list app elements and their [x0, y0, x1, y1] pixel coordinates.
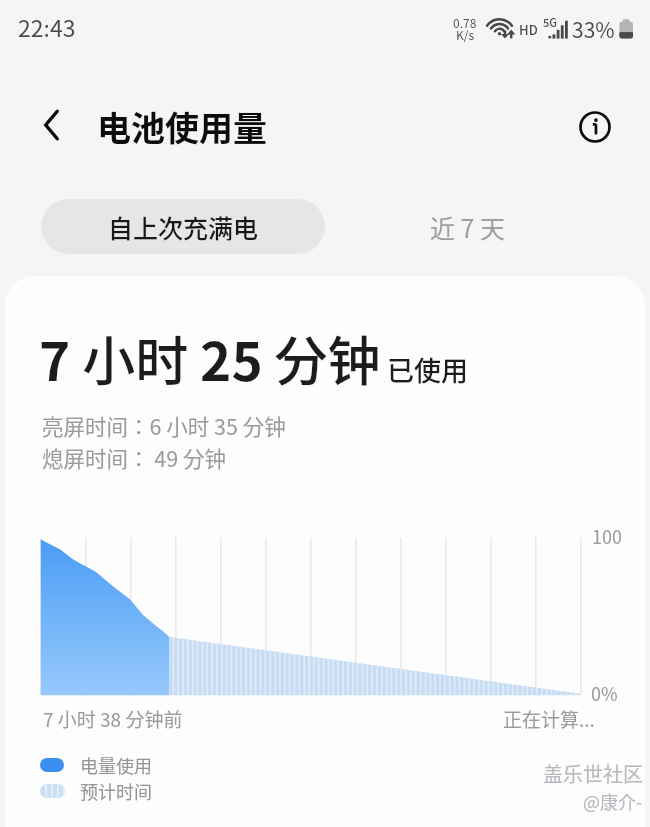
- staticText: 正在计算...: [503, 705, 595, 733]
- staticText: 22:43: [18, 10, 76, 43]
- staticText: HD: [519, 20, 538, 39]
- staticText: 盖乐世社区: [543, 759, 643, 788]
- staticText: 7 小时 38 分钟前: [43, 705, 183, 733]
- staticText: 已使用: [387, 350, 468, 389]
- staticText: 预计时间: [80, 778, 152, 804]
- staticText: 0%: [591, 680, 618, 706]
- button[interactable]: 自上次充满电: [41, 199, 325, 254]
- staticText: 100: [592, 523, 622, 549]
- staticText: @康介-: [583, 788, 643, 814]
- staticText: 近 7 天: [430, 209, 506, 245]
- button[interactable]: [40, 784, 65, 798]
- staticText: 7 小时 25 分钟: [39, 320, 381, 397]
- staticText: 熄屏时间： 49 分钟: [42, 442, 226, 473]
- staticText: 亮屏时间：6 小时 35 分钟: [42, 410, 286, 441]
- button[interactable]: Back: [26, 99, 78, 151]
- button[interactable]: 近 7 天: [380, 199, 556, 254]
- staticText: 0.78: [453, 14, 477, 31]
- staticText: 电池使用量: [97, 102, 267, 151]
- button[interactable]: [40, 758, 64, 772]
- staticText: 自上次充满电: [108, 209, 259, 245]
- button[interactable]: Info: [569, 101, 621, 153]
- staticText: 33%: [572, 14, 615, 44]
- staticText: 5G: [543, 14, 557, 30]
- staticText: 电量使用: [80, 752, 152, 778]
- staticText: K/s: [456, 26, 475, 43]
